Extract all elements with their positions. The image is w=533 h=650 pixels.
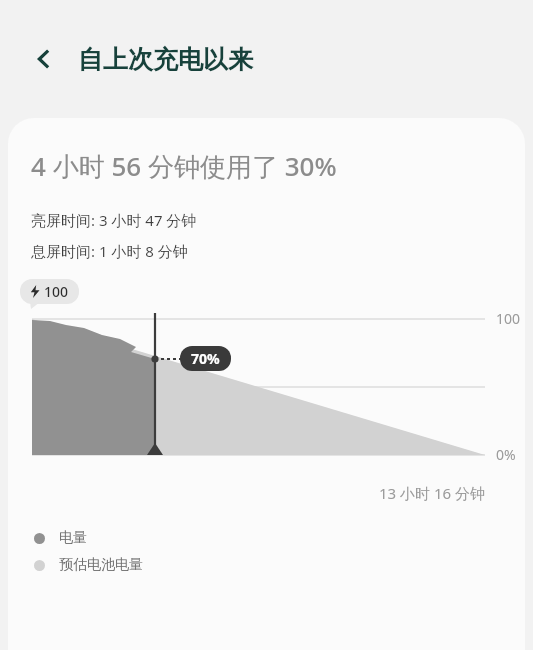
staticText: 70% — [191, 349, 220, 368]
staticText: 预估电池电量 — [59, 556, 143, 574]
staticText: 息屏时间: 1 小时 8 分钟 — [31, 241, 188, 261]
staticText: 亮屏时间: 3 小时 47 分钟 — [31, 210, 197, 230]
staticText: 自上次充电以来 — [78, 44, 253, 75]
staticText: 100 — [496, 309, 521, 328]
staticText: 100 — [44, 282, 69, 301]
staticText: 0% — [496, 445, 516, 464]
staticText: 电量 — [59, 529, 87, 547]
staticText: 4 小时 56 分钟使用了 30% — [31, 148, 337, 184]
staticText: 13 小时 16 分钟 — [378, 483, 485, 503]
button[interactable]: Back — [20, 35, 68, 83]
